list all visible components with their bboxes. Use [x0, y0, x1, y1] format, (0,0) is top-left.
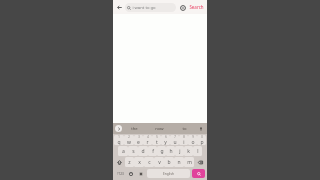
button[interactable]: h: [166, 146, 175, 156]
staticText: w: [127, 139, 131, 145]
button[interactable]: English: [147, 169, 190, 178]
staticText: s: [132, 148, 135, 155]
staticText: q: [117, 139, 121, 145]
staticText: e: [137, 139, 140, 145]
button[interactable]: f: [148, 146, 157, 156]
staticText: r: [146, 139, 149, 145]
button[interactable]: the: [122, 123, 147, 134]
staticText: v: [158, 159, 161, 166]
button[interactable]: 9: [188, 135, 197, 145]
staticText: d: [141, 148, 145, 155]
button[interactable]: Expand toolbar: [115, 125, 122, 132]
button[interactable]: l: [193, 146, 202, 156]
staticText: f: [152, 148, 154, 155]
staticText: 2: [128, 135, 130, 139]
button[interactable]: now: [147, 123, 172, 134]
staticText: z: [128, 159, 131, 166]
staticText: t: [156, 139, 158, 145]
button[interactable]: 8: [179, 135, 188, 145]
button[interactable]: d: [138, 146, 148, 156]
button[interactable]: ?123: [114, 168, 126, 179]
staticText: i want to go: [132, 5, 156, 11]
button[interactable]: z: [125, 157, 134, 167]
button[interactable]: 4: [143, 135, 152, 145]
staticText: p: [200, 139, 204, 145]
button[interactable]: Backspace: [194, 157, 206, 167]
staticText: 8: [183, 135, 185, 139]
staticText: 7: [174, 135, 176, 139]
staticText: 0: [201, 135, 203, 139]
staticText: h: [169, 148, 173, 155]
staticText: k: [187, 148, 190, 155]
staticText: c: [148, 159, 151, 166]
button[interactable]: i want to go: [125, 3, 176, 12]
staticText: 6: [165, 135, 167, 139]
staticText: English: [163, 172, 174, 176]
staticText: 9: [192, 135, 194, 139]
button[interactable]: a: [118, 146, 128, 156]
button[interactable]: g: [157, 146, 166, 156]
button[interactable]: Search: [188, 3, 205, 11]
button[interactable]: 0: [197, 135, 206, 145]
staticText: b: [167, 159, 171, 166]
staticText: j: [179, 148, 181, 155]
staticText: y: [164, 139, 167, 145]
staticText: a: [122, 148, 125, 155]
staticText: 4: [147, 135, 149, 139]
button[interactable]: Voice input: [197, 125, 205, 133]
button[interactable]: x: [134, 157, 144, 167]
button[interactable]: Settings: [178, 3, 187, 12]
staticText: l: [197, 148, 199, 155]
staticText: the: [131, 126, 138, 132]
button[interactable]: Change language: [136, 168, 146, 179]
staticText: 1: [118, 135, 120, 139]
button[interactable]: Shift: [114, 157, 125, 167]
staticText: o: [191, 139, 195, 145]
button[interactable]: n: [174, 157, 184, 167]
staticText: i: [183, 139, 185, 145]
staticText: 5: [156, 135, 158, 139]
button[interactable]: 5: [152, 135, 161, 145]
button[interactable]: 1: [114, 135, 124, 145]
staticText: ?123: [117, 172, 124, 176]
button[interactable]: b: [164, 157, 174, 167]
staticText: Search: [189, 4, 204, 10]
button[interactable]: j: [175, 146, 184, 156]
button[interactable]: s: [128, 146, 138, 156]
button[interactable]: 2: [124, 135, 134, 145]
button[interactable]: v: [154, 157, 164, 167]
staticText: m: [187, 159, 192, 166]
button[interactable]: 3: [134, 135, 143, 145]
staticText: now: [155, 126, 164, 132]
button[interactable]: m: [184, 157, 194, 167]
button[interactable]: c: [144, 157, 154, 167]
button[interactable]: Back: [115, 3, 124, 12]
button[interactable]: k: [184, 146, 193, 156]
staticText: g: [160, 148, 164, 155]
staticText: to: [182, 126, 187, 132]
button[interactable]: Emoji: [126, 168, 136, 179]
button[interactable]: 6: [161, 135, 170, 145]
staticText: u: [173, 139, 177, 145]
staticText: 3: [138, 135, 140, 139]
button[interactable]: 7: [170, 135, 179, 145]
button[interactable]: Search: [192, 169, 205, 178]
staticText: x: [138, 159, 141, 166]
button[interactable]: to: [172, 123, 197, 134]
staticText: n: [177, 159, 181, 166]
